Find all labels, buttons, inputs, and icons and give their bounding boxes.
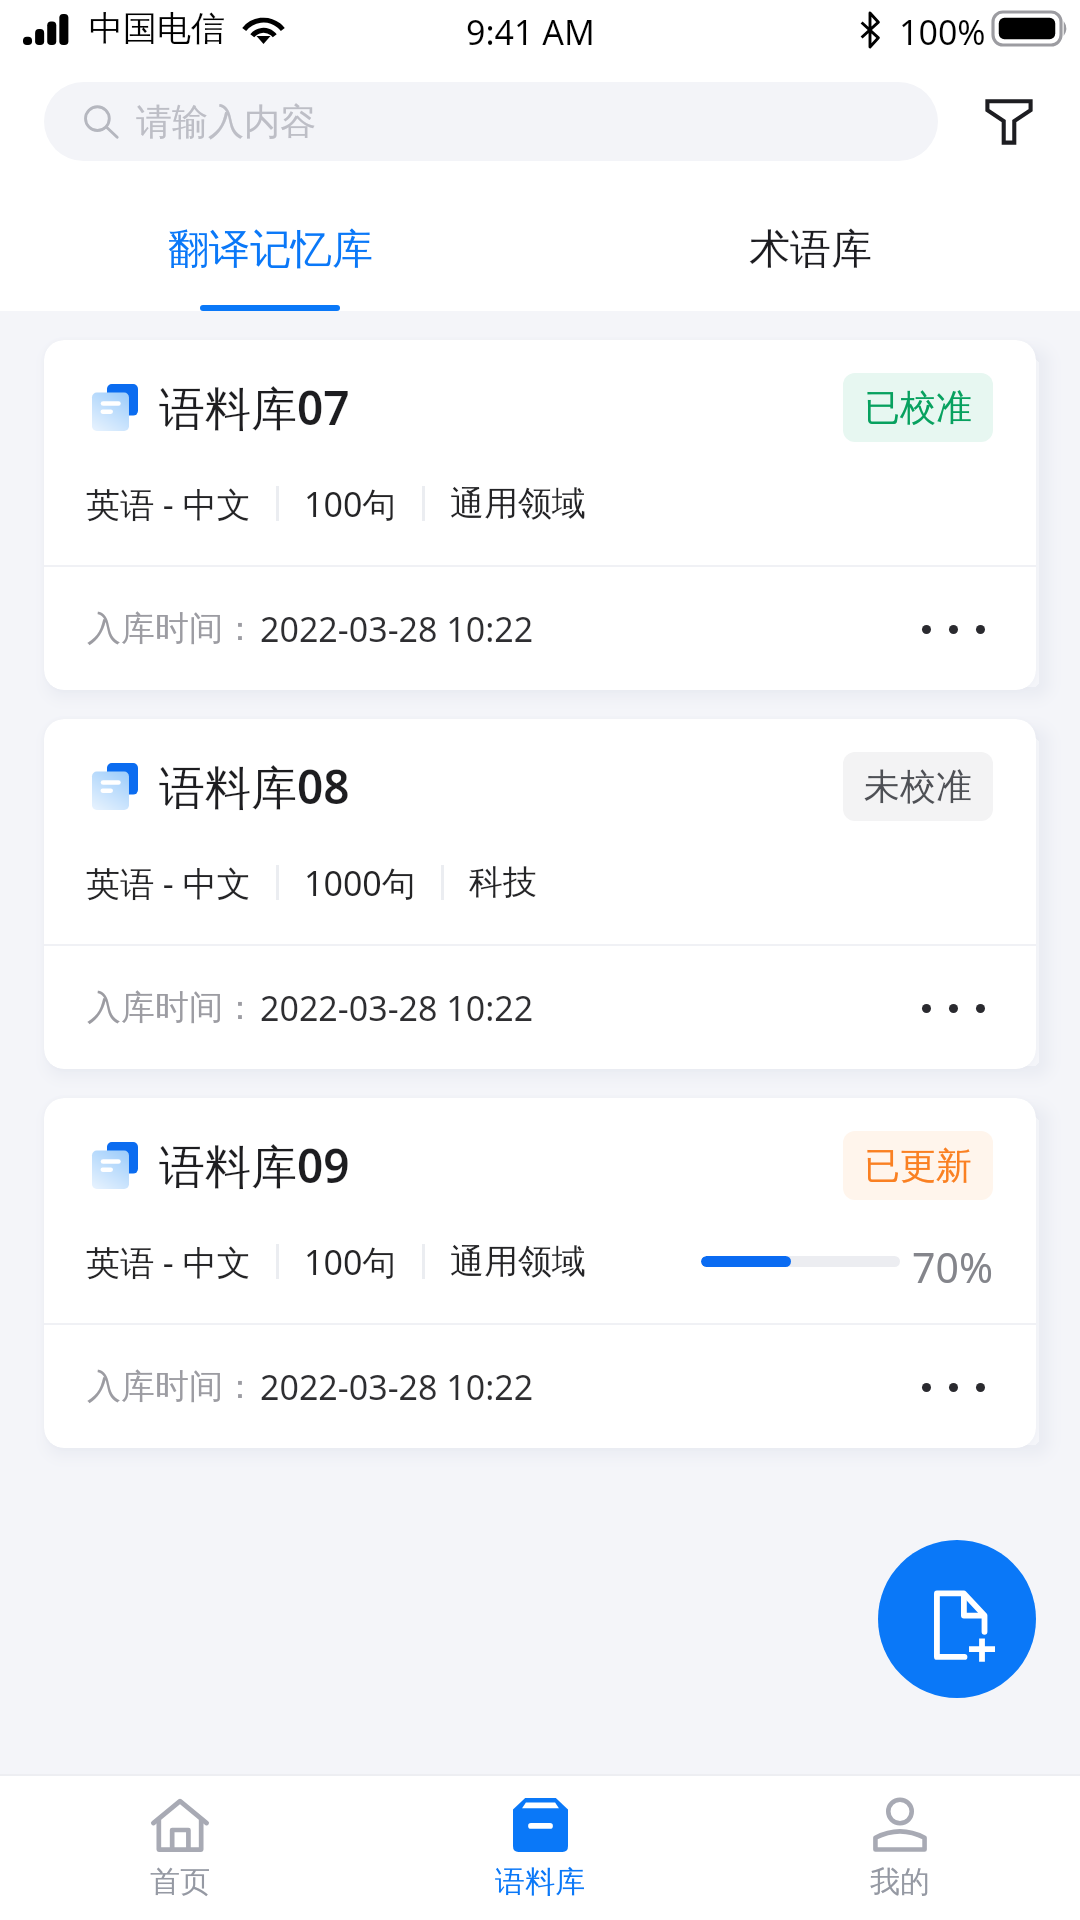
button[interactable]: 术语库 xyxy=(540,180,1080,276)
button[interactable]: 更多 xyxy=(913,589,993,669)
button[interactable]: 更多 xyxy=(913,1347,993,1427)
staticText: 2022-03-28 10:22 xyxy=(260,1364,534,1410)
staticText: 术语库 xyxy=(749,224,872,276)
staticText: 请输入内容 xyxy=(136,99,316,144)
staticText: 通用领域 xyxy=(450,1240,586,1283)
button[interactable]: 新建语料库 xyxy=(878,1540,1036,1698)
staticText: 1000句 xyxy=(304,860,416,904)
button[interactable]: 我的 xyxy=(720,1776,1080,1901)
staticText: 入库时间： xyxy=(87,1365,257,1408)
staticText: 9:41 AM xyxy=(466,9,595,55)
staticText: 100% xyxy=(899,9,986,55)
staticText: 语料库08 xyxy=(159,755,350,818)
staticText: 2022-03-28 10:22 xyxy=(260,606,534,652)
staticText: 未校准 xyxy=(864,764,972,809)
button[interactable]: 筛选 xyxy=(938,82,1080,161)
staticText: 100句 xyxy=(304,1239,397,1283)
button[interactable]: 语料库08 xyxy=(44,719,1036,1069)
button[interactable]: 语料库 xyxy=(360,1776,720,1901)
staticText: 语料库07 xyxy=(159,376,350,439)
staticText: 英语 - 中文 xyxy=(86,860,251,904)
staticText: 我的 xyxy=(870,1863,930,1901)
staticText: 已校准 xyxy=(864,385,972,430)
staticText: 已更新 xyxy=(864,1143,972,1188)
button[interactable]: 请输入内容 xyxy=(44,82,938,161)
staticText: 首页 xyxy=(150,1863,210,1901)
staticText: 入库时间： xyxy=(87,986,257,1029)
button[interactable]: 更多 xyxy=(913,968,993,1048)
button[interactable]: 语料库09 xyxy=(44,1098,1036,1448)
button[interactable]: 首页 xyxy=(0,1776,360,1901)
staticText: 中国电信 xyxy=(89,7,225,50)
button[interactable]: 翻译记忆库 xyxy=(0,180,540,311)
staticText: 2022-03-28 10:22 xyxy=(260,985,534,1031)
staticText: 语料库09 xyxy=(159,1134,350,1197)
staticText: 科技 xyxy=(469,861,537,904)
staticText: 英语 - 中文 xyxy=(86,1239,251,1283)
staticText: 英语 - 中文 xyxy=(86,481,251,525)
staticText: 通用领域 xyxy=(450,482,586,525)
button[interactable]: 语料库07 xyxy=(44,340,1036,690)
staticText: 入库时间： xyxy=(87,607,257,650)
staticText: 语料库 xyxy=(495,1863,585,1901)
staticText: 100句 xyxy=(304,481,397,525)
staticText: 翻译记忆库 xyxy=(168,224,373,276)
staticText: 70% xyxy=(912,1239,993,1283)
